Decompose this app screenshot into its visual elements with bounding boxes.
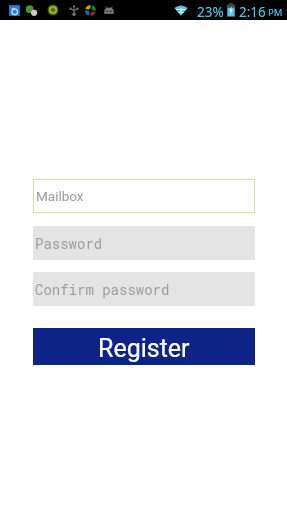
other: Wi-Fi connected [174, 4, 188, 16]
staticText: Password [35, 234, 103, 252]
button[interactable]: Confirm password [33, 272, 255, 306]
staticText: 23% [197, 3, 224, 21]
other: App notification [47, 4, 59, 16]
staticText: Confirm password [35, 280, 170, 298]
button[interactable]: Mailbox [33, 179, 255, 213]
staticText: PM [268, 6, 283, 19]
other: USB connected [69, 4, 79, 16]
staticText: 2:16 [239, 3, 266, 21]
other: Messages notification [25, 4, 38, 17]
other: Android system notification [103, 5, 115, 16]
button[interactable]: Password [33, 226, 255, 260]
other: Battery charging 23 percent [227, 3, 235, 17]
button[interactable]: Register [33, 328, 255, 365]
other: Camera notification [9, 5, 20, 16]
other: Sync notification [84, 4, 97, 17]
staticText: Mailbox [36, 188, 84, 204]
staticText: Register [98, 334, 190, 363]
